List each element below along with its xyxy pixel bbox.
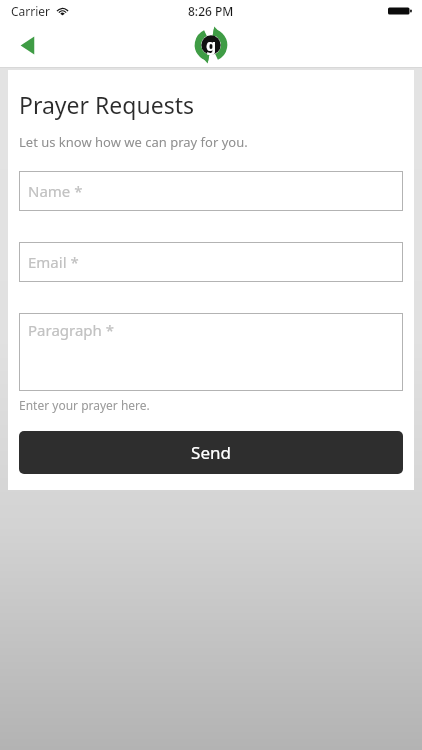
staticText: Carrier	[11, 3, 51, 19]
button[interactable]: Back	[6, 24, 48, 66]
button[interactable]: Paragraph *	[19, 313, 403, 391]
button[interactable]: Name *	[19, 171, 403, 211]
staticText: Enter your prayer here.	[19, 397, 150, 413]
staticText: g	[206, 34, 217, 56]
staticText: Send	[191, 441, 231, 464]
button[interactable]: Email *	[19, 242, 403, 282]
button[interactable]: Home	[193, 27, 229, 63]
staticText: 8:26 PM	[188, 3, 234, 19]
staticText: Email *	[28, 252, 79, 272]
staticText: Name *	[28, 181, 83, 201]
button[interactable]: Send	[19, 431, 403, 474]
staticText: Prayer Requests	[19, 89, 194, 120]
staticText: Let us know how we can pray for you.	[19, 133, 248, 151]
staticText: Paragraph *	[28, 320, 114, 340]
